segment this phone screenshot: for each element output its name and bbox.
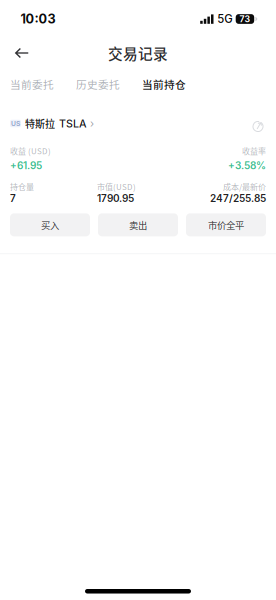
staticText: 当前委托	[10, 76, 54, 92]
staticText: 当前持仓	[142, 76, 186, 92]
staticText: 10:03	[20, 11, 55, 27]
staticText: 收益 (USD)	[10, 145, 51, 157]
button[interactable]: 卖出	[98, 213, 178, 236]
staticText: 247/255.85	[210, 192, 266, 204]
button[interactable]: Refresh	[250, 115, 266, 132]
staticText: +61.95	[10, 160, 42, 172]
staticText: 73	[239, 14, 250, 24]
staticText: 成本/最新价	[223, 181, 266, 192]
staticText: 历史委托	[76, 76, 120, 92]
staticText: TSLA	[59, 117, 87, 130]
staticText: 1790.95	[97, 192, 134, 204]
staticText: 7	[10, 192, 16, 204]
staticText: 买入	[41, 218, 59, 232]
staticText: ›	[90, 117, 94, 130]
button[interactable]: 当前持仓	[132, 71, 196, 97]
button[interactable]: 买入	[10, 213, 90, 236]
staticText: 特斯拉	[25, 116, 55, 131]
staticText: +3.58%	[228, 160, 266, 172]
button[interactable]: 市价全平	[186, 213, 266, 236]
staticText: US	[11, 119, 20, 128]
button[interactable]: 历史委托	[66, 71, 130, 97]
staticText: 交易记录	[108, 42, 168, 64]
button[interactable]: 当前委托	[0, 71, 64, 97]
button[interactable]: Back	[6, 38, 38, 68]
staticText: 收益率	[242, 145, 266, 157]
staticText: 市价全平	[208, 218, 244, 232]
staticText: 市值(USD)	[97, 181, 136, 192]
button[interactable]: US	[10, 116, 94, 131]
staticText: 卖出	[129, 218, 147, 232]
staticText: 5G	[217, 12, 232, 26]
staticText: 持仓量	[10, 181, 34, 192]
